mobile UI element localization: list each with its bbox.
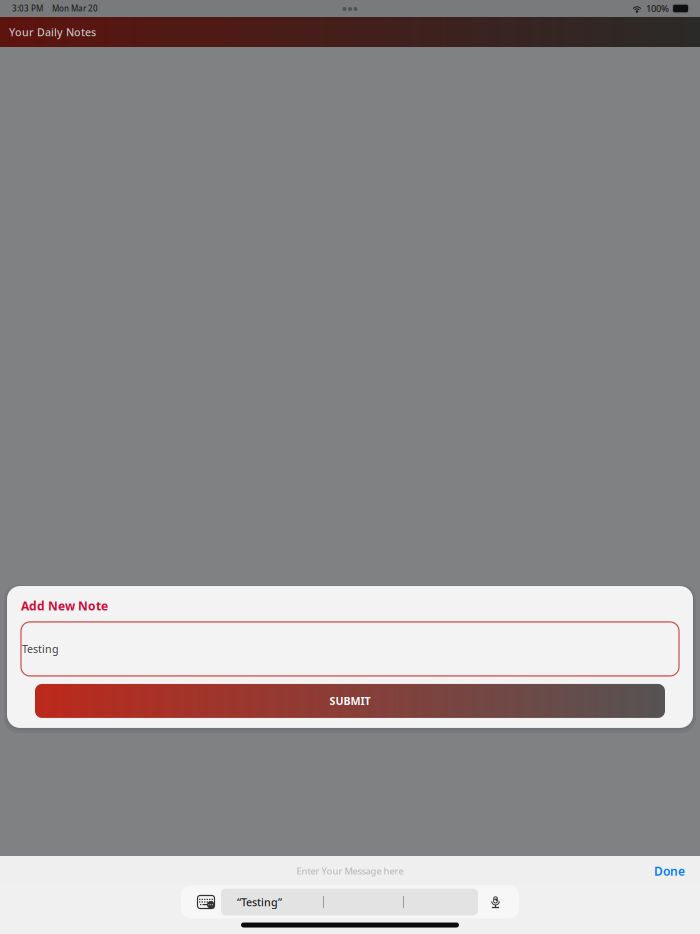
button[interactable]: Dictate (478, 885, 519, 918)
staticText: Done (654, 863, 685, 879)
staticText: Mon Mar 20 (52, 3, 98, 14)
staticText: Testing (22, 642, 59, 656)
button[interactable]: Keyboard settings (181, 885, 221, 918)
staticText: Your Daily Notes (9, 25, 96, 39)
staticText: SUBMIT (329, 694, 370, 708)
staticText: Add New Note (21, 598, 108, 614)
staticText: 100% (646, 2, 669, 15)
staticText: “Testing” (237, 895, 282, 909)
staticText: Enter Your Message here (296, 865, 403, 877)
button[interactable]: Done (639, 856, 700, 886)
button[interactable]: SUBMIT (7, 684, 693, 718)
staticText: 3:03 PM (12, 3, 43, 14)
